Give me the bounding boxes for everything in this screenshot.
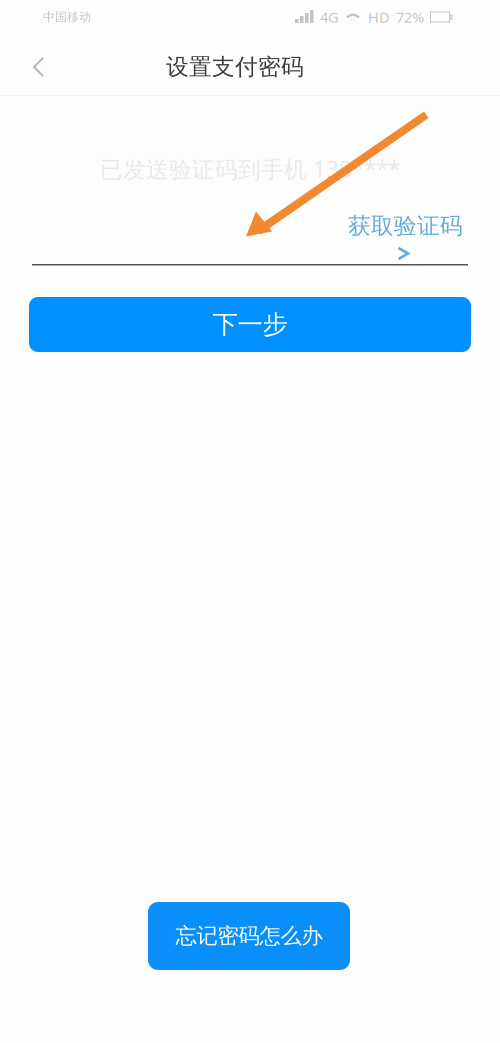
staticText: HD bbox=[368, 7, 390, 27]
staticText: 4G bbox=[320, 7, 339, 27]
staticText: 下一步 bbox=[212, 309, 287, 340]
button[interactable]: 下一步 bbox=[29, 297, 471, 352]
staticText: 已发送验证码到手机 135**** bbox=[100, 154, 400, 184]
staticText: 72% bbox=[396, 7, 424, 27]
button[interactable]: 忘记密码怎么办 bbox=[148, 902, 350, 970]
button[interactable]: Back bbox=[22, 49, 56, 85]
staticText: 设置支付密码 bbox=[166, 53, 304, 81]
staticText: 中国移动 bbox=[43, 10, 91, 24]
staticText: 忘记密码怎么办 bbox=[175, 923, 322, 949]
button[interactable]: 获取验证码 bbox=[347, 212, 464, 262]
staticText: 获取验证码 bbox=[348, 212, 463, 240]
